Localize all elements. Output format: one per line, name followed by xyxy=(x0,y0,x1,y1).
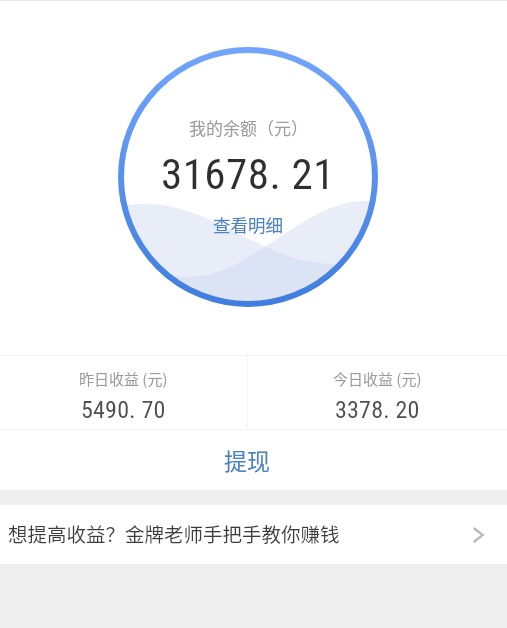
staticText: 我的余额（元） xyxy=(189,115,308,140)
button[interactable]: 昨日收益 (元) xyxy=(0,356,247,424)
staticText: 31678. 21 xyxy=(161,149,335,199)
staticText: 想提高收益？金牌老师手把手教你赚钱 xyxy=(8,519,467,547)
staticText: 查看明细 xyxy=(213,212,283,237)
staticText: 提现 xyxy=(224,443,270,476)
staticText: 3378. 20 xyxy=(335,396,420,424)
button[interactable]: 提现 xyxy=(0,430,507,489)
button[interactable]: 查看明细 xyxy=(213,212,283,237)
button[interactable]: 今日收益 (元) xyxy=(248,356,507,424)
staticText: 昨日收益 (元) xyxy=(79,368,168,390)
button[interactable]: 想提高收益？金牌老师手把手教你赚钱 xyxy=(0,505,507,564)
staticText: 5490. 70 xyxy=(81,396,166,424)
staticText: 今日收益 (元) xyxy=(333,368,422,390)
